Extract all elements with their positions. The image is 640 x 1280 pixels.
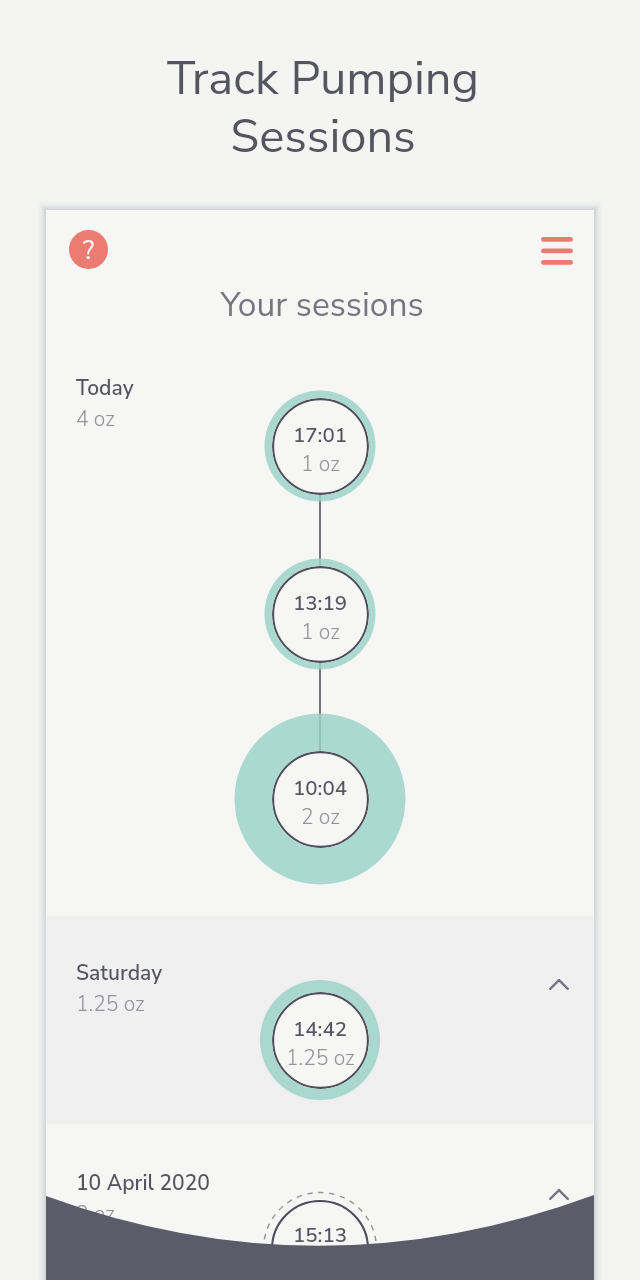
button[interactable]: Help [69, 230, 108, 269]
button[interactable]: Collapse [537, 962, 581, 1006]
staticText: 4 oz [76, 405, 115, 434]
button[interactable]: 10:04 [272, 751, 369, 848]
staticText: 17:01 [293, 421, 348, 449]
staticText: 14:42 [293, 1015, 348, 1043]
button[interactable]: 14:42 [272, 992, 369, 1089]
staticText: 10 April 2020 [76, 1169, 210, 1198]
staticText: 1 oz [301, 618, 340, 647]
staticText: Track Pumping Sessions [3, 46, 640, 169]
staticText: ? [83, 234, 95, 268]
staticText: 13:19 [293, 589, 348, 617]
staticText: 1.25 oz [76, 990, 145, 1019]
staticText: 15:13 [46, 1221, 594, 1249]
staticText: 2 oz [301, 803, 340, 832]
staticText: 2 oz [76, 1200, 115, 1229]
button[interactable]: 17:01 [272, 398, 369, 495]
button[interactable]: Menu [532, 229, 582, 273]
staticText: 1 oz [301, 450, 340, 479]
staticText: Your sessions [48, 282, 596, 328]
button[interactable]: 13:19 [272, 566, 369, 663]
button[interactable]: Collapse [537, 1172, 581, 1216]
staticText: 1.25 oz [286, 1044, 355, 1073]
staticText: Today [76, 374, 134, 403]
staticText: 10:04 [293, 774, 348, 802]
staticText: Saturday [76, 959, 163, 988]
